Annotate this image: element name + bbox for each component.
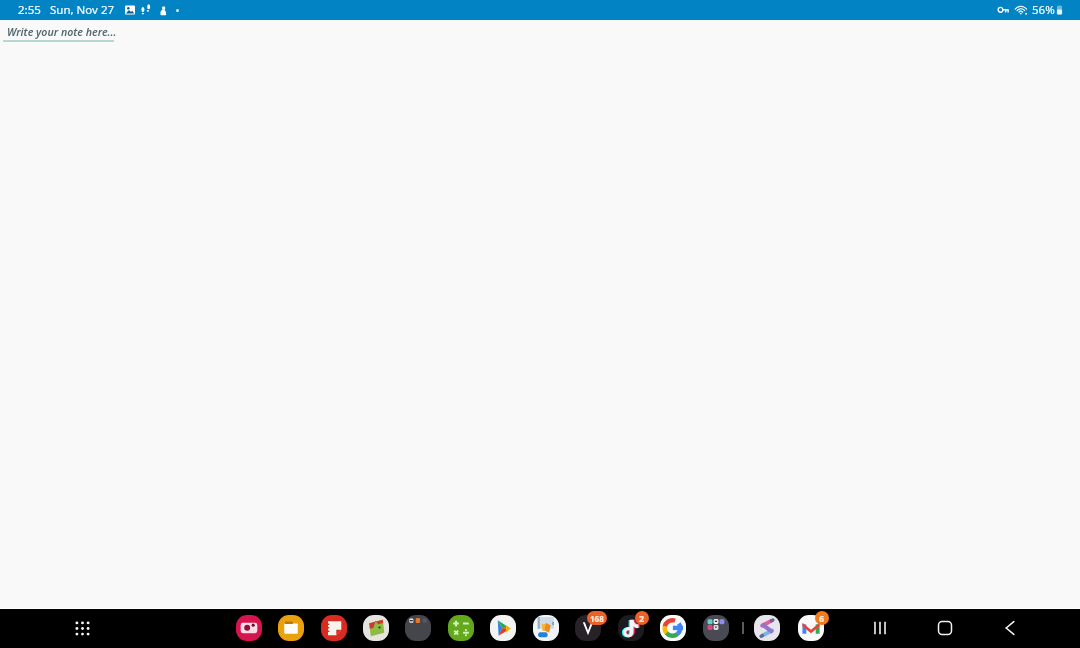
staticText: 168	[590, 613, 604, 624]
button[interactable]: Camera	[236, 615, 262, 641]
staticText: 6	[819, 612, 825, 624]
button[interactable]: Samsung Store	[533, 615, 559, 641]
button[interactable]: Recents	[866, 614, 894, 642]
button[interactable]: Keep	[321, 615, 347, 641]
button[interactable]: Samsung Notes	[754, 615, 780, 641]
staticText: 56%	[1032, 2, 1055, 18]
button[interactable]: Calculator	[448, 615, 474, 641]
button[interactable]: Play Store	[490, 615, 516, 641]
staticText: Write your note here...	[7, 25, 117, 39]
button[interactable]: Google	[660, 615, 686, 641]
button[interactable]: Viber	[575, 615, 601, 641]
button[interactable]: Folder	[703, 615, 729, 641]
button[interactable]: Gallery	[363, 615, 389, 641]
button[interactable]: Write your note here...	[0, 20, 111, 34]
staticText: 2:55	[18, 2, 41, 18]
button[interactable]: All apps	[69, 615, 96, 642]
button[interactable]: Notes	[278, 615, 304, 641]
button[interactable]: Home	[931, 614, 959, 642]
button[interactable]: Back	[996, 614, 1024, 642]
button[interactable]: Gmail	[798, 615, 824, 641]
button[interactable]: Clock	[405, 615, 431, 641]
button[interactable]: TikTok	[618, 615, 644, 641]
staticText: Sun, Nov 27	[50, 2, 115, 18]
staticText: 2	[639, 612, 645, 624]
